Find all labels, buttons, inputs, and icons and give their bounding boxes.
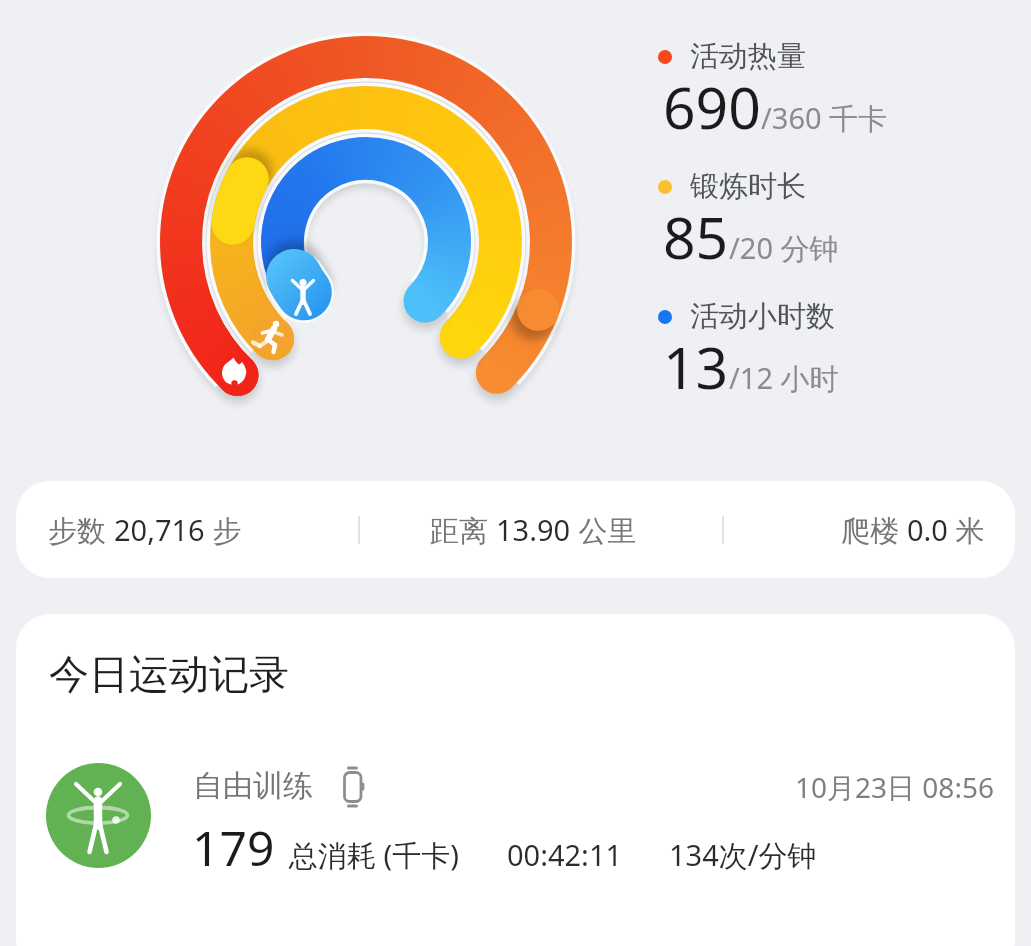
button[interactable]: 自由训练 bbox=[16, 746, 1015, 891]
staticText: 公里 bbox=[571, 510, 637, 550]
staticText: 0.0 bbox=[907, 510, 948, 549]
staticText: 179 bbox=[192, 815, 275, 880]
staticText: 85 bbox=[663, 198, 729, 276]
button[interactable]: 步数 bbox=[16, 481, 1015, 578]
staticText: 爬楼 bbox=[841, 510, 907, 550]
staticText: 00:42:11 bbox=[507, 835, 623, 874]
staticText: 距离 bbox=[430, 510, 496, 550]
staticText: 20,716 bbox=[114, 510, 205, 549]
staticText: 步 bbox=[205, 510, 242, 550]
staticText: 13 bbox=[663, 328, 729, 406]
staticText: 步数 bbox=[48, 510, 114, 550]
staticText: /12 小时 bbox=[729, 358, 839, 398]
staticText: 锻炼时长 bbox=[690, 168, 806, 205]
button[interactable]: 活动小时数 bbox=[658, 298, 835, 335]
staticText: 活动热量 bbox=[690, 38, 806, 75]
staticText: 自由训练 bbox=[193, 767, 313, 805]
staticText: 米 bbox=[948, 510, 985, 550]
staticText: 134次/分钟 bbox=[669, 835, 817, 875]
staticText: 10月23日 08:56 bbox=[795, 768, 994, 806]
staticText: 今日运动记录 bbox=[49, 649, 289, 699]
button[interactable]: 锻炼时长 bbox=[658, 168, 806, 205]
staticText: /20 分钟 bbox=[729, 228, 839, 268]
button[interactable]: 活动热量 bbox=[658, 38, 806, 75]
staticText: 690 bbox=[663, 68, 761, 146]
staticText: 活动小时数 bbox=[690, 298, 835, 335]
staticText: 总消耗 (千卡) bbox=[289, 835, 459, 875]
staticText: /360 千卡 bbox=[761, 98, 888, 138]
staticText: 13.90 bbox=[496, 510, 571, 549]
